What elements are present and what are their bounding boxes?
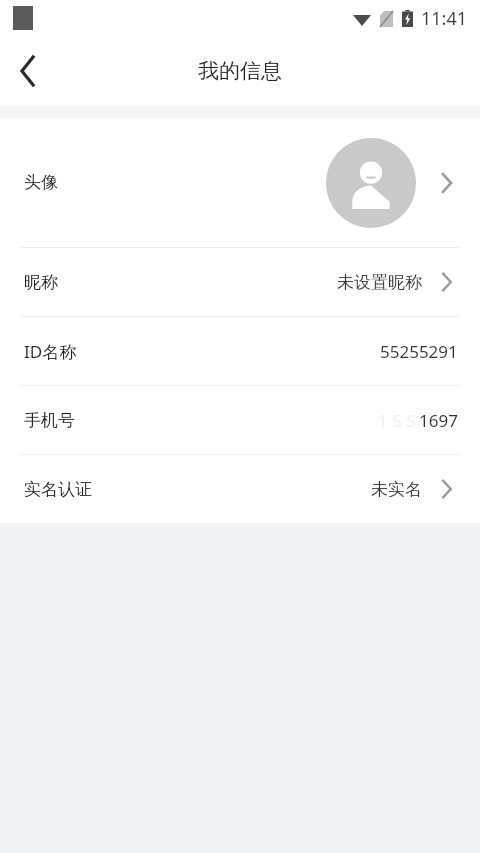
staticText: ID名称 <box>24 340 77 363</box>
staticText: 头像 <box>24 172 58 193</box>
staticText: 未实名 <box>371 479 422 500</box>
button[interactable]: 头像 <box>0 118 480 247</box>
button[interactable]: 实名认证 <box>0 455 480 523</box>
staticText: 1697 <box>419 409 458 432</box>
staticText: 实名认证 <box>24 479 92 500</box>
staticText: 我的信息 <box>198 58 282 84</box>
staticText: 55255291 <box>380 340 458 363</box>
button[interactable]: Back <box>0 43 56 99</box>
button[interactable]: 昵称 <box>0 248 480 316</box>
staticText: 昵称 <box>24 272 58 293</box>
staticText: 未设置昵称 <box>337 272 422 293</box>
button[interactable]: ID名称 <box>0 317 480 385</box>
staticText: 11:41 <box>421 6 468 31</box>
button[interactable]: 手机号 <box>0 386 480 454</box>
staticText: 1 5 5 <box>378 409 417 432</box>
staticText: 手机号 <box>24 410 75 431</box>
